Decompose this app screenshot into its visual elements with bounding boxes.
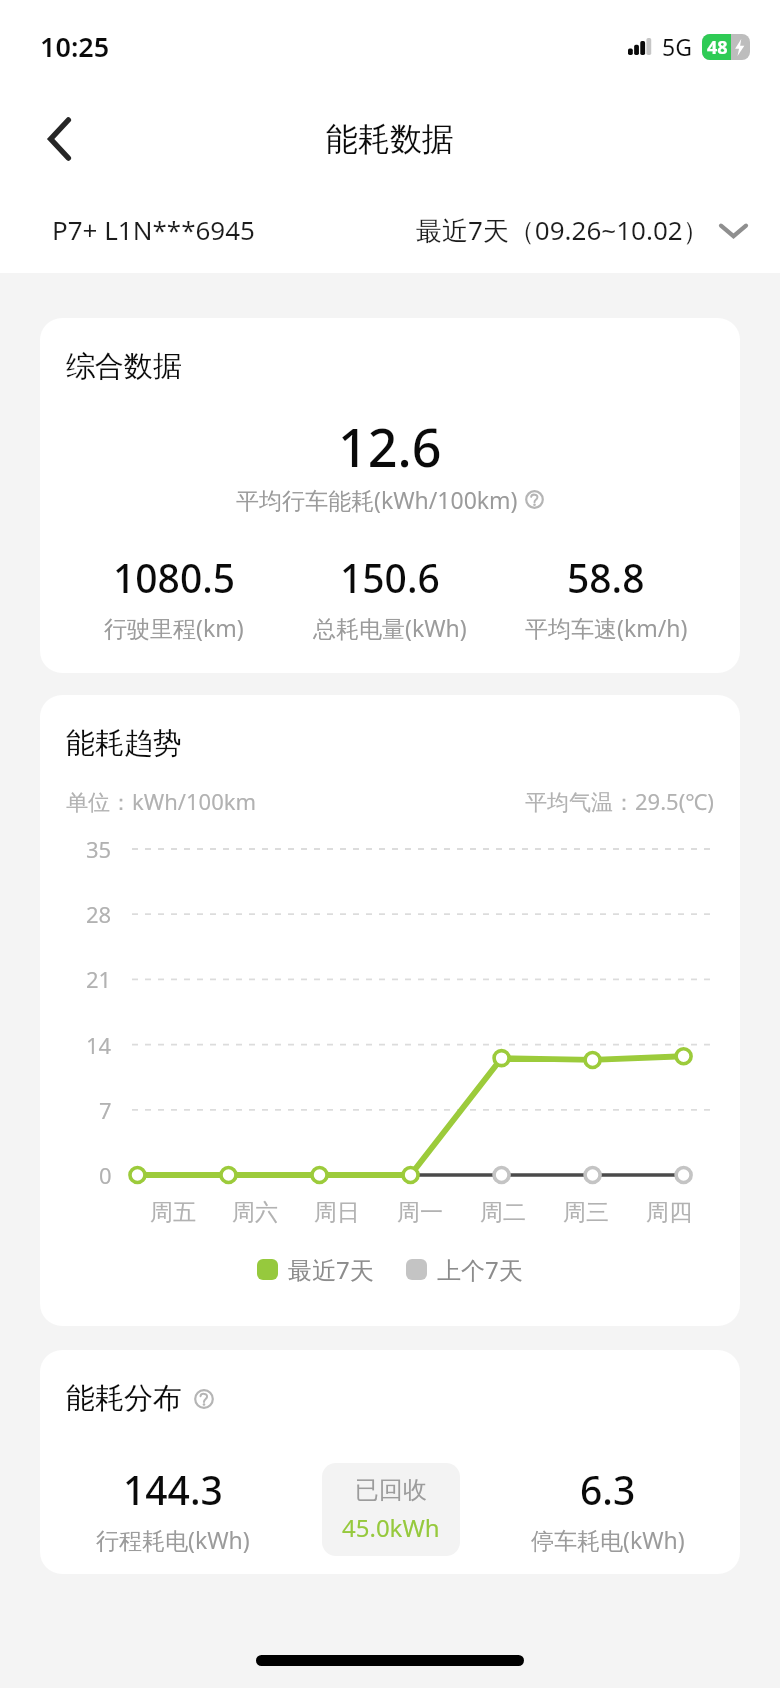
- staticText: 周五: [150, 1198, 196, 1227]
- staticText: 28: [86, 899, 112, 929]
- staticText: 周日: [314, 1198, 360, 1227]
- button[interactable]: 最近7天: [257, 1253, 374, 1286]
- staticText: 最近7天: [288, 1253, 374, 1286]
- staticText: 能耗数据: [326, 119, 454, 159]
- staticText: 周三: [563, 1198, 609, 1227]
- staticText: 45.0kWh: [342, 1511, 440, 1544]
- staticText: 停车耗电(kWh): [531, 1524, 685, 1555]
- staticText: 总耗电量(kWh): [313, 612, 467, 643]
- staticText: 上个7天: [437, 1253, 523, 1286]
- button[interactable]: 最近7天（09.26~10.02）: [416, 212, 746, 248]
- staticText: 平均气温：29.5(℃): [525, 786, 714, 816]
- staticText: 周二: [480, 1198, 526, 1227]
- staticText: 最近7天（09.26~10.02）: [416, 212, 709, 248]
- staticText: 5G: [662, 31, 692, 62]
- staticText: 1080.5: [113, 551, 236, 604]
- staticText: 35: [86, 834, 112, 864]
- staticText: 10:25: [40, 28, 110, 65]
- staticText: 6.3: [580, 1463, 636, 1516]
- button[interactable]: Back: [26, 106, 92, 172]
- button[interactable]: 144.3: [66, 1463, 279, 1555]
- staticText: 行程耗电(kWh): [96, 1524, 250, 1555]
- staticText: 平均车速(km/h): [525, 612, 688, 643]
- staticText: 已回收: [355, 1475, 427, 1505]
- staticText: P7+ L1N***6945: [52, 212, 255, 247]
- staticText: 行驶里程(km): [104, 612, 244, 643]
- button[interactable]: 1080.5: [66, 551, 282, 643]
- staticText: 7: [99, 1095, 112, 1125]
- staticText: 12.6: [338, 411, 442, 482]
- button[interactable]: 6.3: [502, 1463, 714, 1555]
- button[interactable]: 150.6: [282, 551, 498, 643]
- staticText: 能耗趋势: [66, 725, 182, 762]
- staticText: 150.6: [340, 551, 440, 604]
- staticText: 单位：kWh/100km: [66, 786, 257, 816]
- staticText: 58.8: [567, 551, 645, 604]
- staticText: 21: [86, 964, 112, 994]
- staticText: 144.3: [123, 1463, 223, 1516]
- staticText: 平均行车能耗(kWh/100km): [236, 484, 518, 515]
- staticText: 综合数据: [66, 348, 182, 385]
- button[interactable]: 上个7天: [406, 1253, 523, 1286]
- staticText: 14: [86, 1030, 112, 1060]
- staticText: 周六: [232, 1198, 278, 1227]
- staticText: 能耗分布: [66, 1380, 182, 1417]
- staticText: 周四: [646, 1198, 692, 1227]
- staticText: 0: [99, 1160, 112, 1190]
- button[interactable]: 58.8: [498, 551, 714, 643]
- staticText: 48: [707, 35, 728, 60]
- staticText: 周一: [397, 1198, 443, 1227]
